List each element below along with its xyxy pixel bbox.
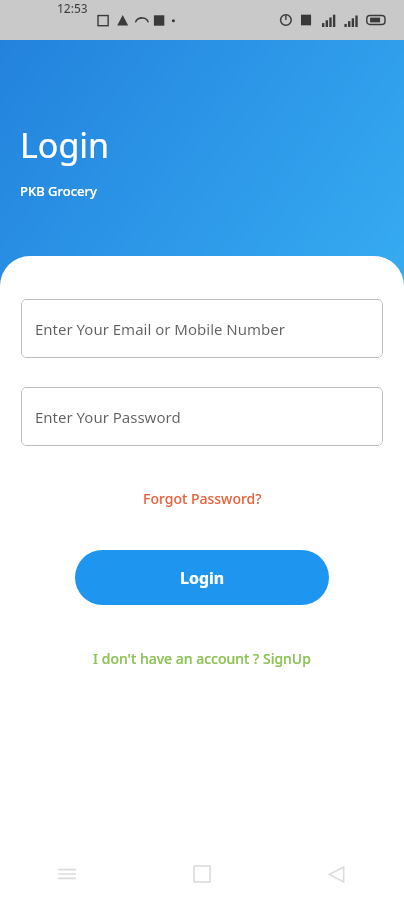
button[interactable]: Enter Your Email or Mobile Number [21,299,383,358]
staticText: Login [20,122,110,168]
staticText: PKB Grocery [20,182,97,200]
button[interactable]: Enter Your Password [21,387,383,446]
button[interactable]: Home [134,848,269,900]
staticText: 12:53 [57,0,88,16]
staticText: I don't have an account ? SignUp [93,649,311,668]
button[interactable]: Forgot Password? [0,483,404,514]
button[interactable]: Recent apps [0,848,134,900]
staticText: Forgot Password? [143,489,262,508]
staticText: Enter Your Email or Mobile Number [35,319,285,339]
button[interactable]: Back [269,848,404,900]
staticText: Enter Your Password [35,407,181,427]
button[interactable]: I don't have an account ? SignUp [0,643,404,674]
staticText: Login [180,567,225,589]
button[interactable]: Login [75,550,329,605]
